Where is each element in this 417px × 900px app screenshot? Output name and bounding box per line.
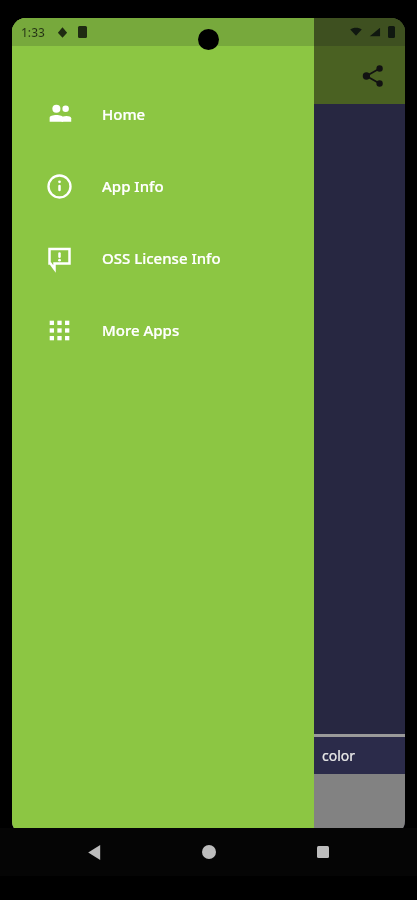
staticText: App Info	[102, 176, 164, 196]
staticText: color	[322, 746, 356, 765]
button[interactable]: Home	[12, 78, 314, 150]
button[interactable]: Home	[187, 830, 231, 874]
button[interactable]: More Apps	[12, 294, 314, 366]
button[interactable]: Back	[72, 830, 116, 874]
staticText: Home	[102, 104, 146, 124]
staticText: 1:33	[21, 24, 45, 40]
button[interactable]: Recent apps	[301, 830, 345, 874]
button[interactable]: Share	[349, 52, 397, 100]
button[interactable]: color	[12, 737, 405, 774]
button[interactable]: OSS License Info	[12, 222, 314, 294]
button[interactable]: App Info	[12, 150, 314, 222]
staticText: More Apps	[102, 320, 180, 340]
button[interactable]: Open	[12, 774, 75, 835]
staticText: OSS License Info	[102, 248, 221, 268]
